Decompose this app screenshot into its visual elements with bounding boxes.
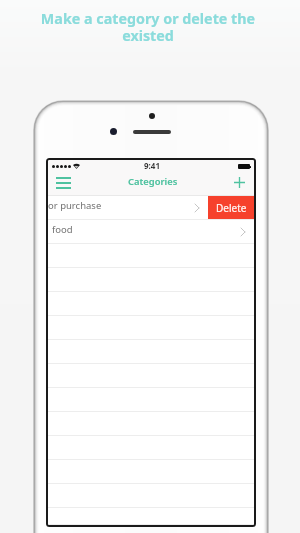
- button[interactable]: or purchase: [48, 196, 208, 220]
- staticText: Make a category or delete the existed: [8, 9, 288, 45]
- staticText: 9:41: [144, 160, 160, 170]
- staticText: food: [52, 223, 73, 236]
- button[interactable]: Add category: [229, 172, 249, 192]
- button[interactable]: Delete: [208, 196, 254, 220]
- staticText: Categories: [128, 175, 178, 188]
- staticText: Delete: [216, 201, 247, 215]
- staticText: or purchase: [48, 199, 102, 212]
- button[interactable]: food: [48, 220, 254, 244]
- button[interactable]: Menu: [51, 172, 75, 194]
